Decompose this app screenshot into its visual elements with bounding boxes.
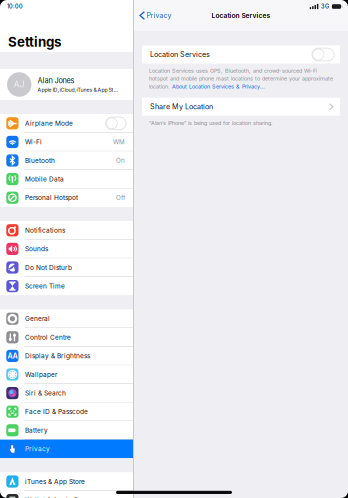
- staticText: Control Centre: [25, 333, 71, 341]
- staticText: Do Not Disturb: [25, 263, 72, 271]
- staticText: Display & Brightness: [25, 352, 90, 360]
- staticText: Airplane Mode: [25, 119, 73, 127]
- staticText: Wallet & Apple Pay: [25, 496, 86, 498]
- staticText: location.: [149, 83, 172, 90]
- staticText: Screen Time: [25, 282, 65, 290]
- button[interactable]: Wallet & Apple Pay: [0, 491, 133, 498]
- button[interactable]: Privacy: [134, 7, 175, 23]
- staticText: Privacy: [146, 11, 171, 20]
- staticText: Location Services uses GPS, Bluetooth, a…: [149, 67, 317, 74]
- staticText: General: [25, 315, 50, 323]
- button[interactable]: Airplane Mode: [0, 114, 133, 133]
- button[interactable]: Bluetooth: [0, 151, 133, 170]
- staticText: On: [116, 157, 125, 164]
- staticText: Settings: [8, 34, 61, 50]
- staticText: Mobile Data: [25, 175, 64, 183]
- staticText: Personal Hotspot: [25, 194, 78, 202]
- button[interactable]: Do Not Disturb: [0, 258, 133, 277]
- staticText: 3G: [321, 3, 329, 10]
- button[interactable]: Personal Hotspot: [0, 188, 133, 207]
- button[interactable]: iTunes & App Store: [0, 472, 133, 491]
- staticText: Location Services: [150, 50, 210, 59]
- staticText: About Location Services & Privacy…: [172, 83, 265, 90]
- staticText: “Alan’s iPhone” is being used for locati…: [149, 120, 273, 126]
- staticText: Sounds: [25, 245, 48, 253]
- staticText: Privacy: [25, 445, 50, 453]
- staticText: Wallpaper: [25, 370, 57, 378]
- staticText: iTunes & App Store: [25, 477, 85, 485]
- button[interactable]: Face ID & Passcode: [0, 402, 133, 421]
- button[interactable]: Wallpaper: [0, 365, 133, 384]
- button[interactable]: Battery: [0, 421, 133, 440]
- button[interactable]: Wi-Fi: [0, 133, 133, 151]
- button[interactable]: Screen Time: [0, 277, 133, 295]
- staticText: Apple ID, iCloud, iTunes & App St…: [37, 87, 117, 93]
- staticText: Battery: [25, 426, 48, 434]
- staticText: Share My Location: [150, 102, 213, 111]
- button[interactable]: General: [0, 309, 133, 328]
- staticText: 10:00: [7, 3, 23, 10]
- button[interactable]: Notifications: [0, 221, 133, 240]
- button[interactable]: Sounds: [0, 240, 133, 258]
- staticText: Alan Jones: [37, 76, 74, 85]
- staticText: Bluetooth: [25, 156, 55, 164]
- staticText: Off: [116, 194, 125, 201]
- staticText: Siri & Search: [25, 389, 66, 397]
- button[interactable]: About Location Services & Privacy…: [172, 83, 265, 90]
- button[interactable]: Mobile Data: [0, 170, 133, 188]
- button[interactable]: AJ: [0, 69, 133, 100]
- staticText: Location Services: [211, 11, 270, 20]
- staticText: Notifications: [25, 226, 65, 234]
- staticText: Wi-Fi: [25, 138, 42, 146]
- staticText: AJ: [14, 79, 25, 89]
- staticText: AA: [7, 352, 17, 360]
- staticText: hotspot and mobile phone mast locations …: [149, 75, 333, 82]
- button[interactable]: AA: [0, 347, 133, 365]
- staticText: Face ID & Passcode: [25, 408, 88, 416]
- button[interactable]: Share My Location: [142, 98, 340, 116]
- button[interactable]: Siri & Search: [0, 384, 133, 402]
- button[interactable]: Control Centre: [0, 328, 133, 347]
- button[interactable]: Privacy: [0, 440, 133, 458]
- staticText: WM: [113, 138, 125, 146]
